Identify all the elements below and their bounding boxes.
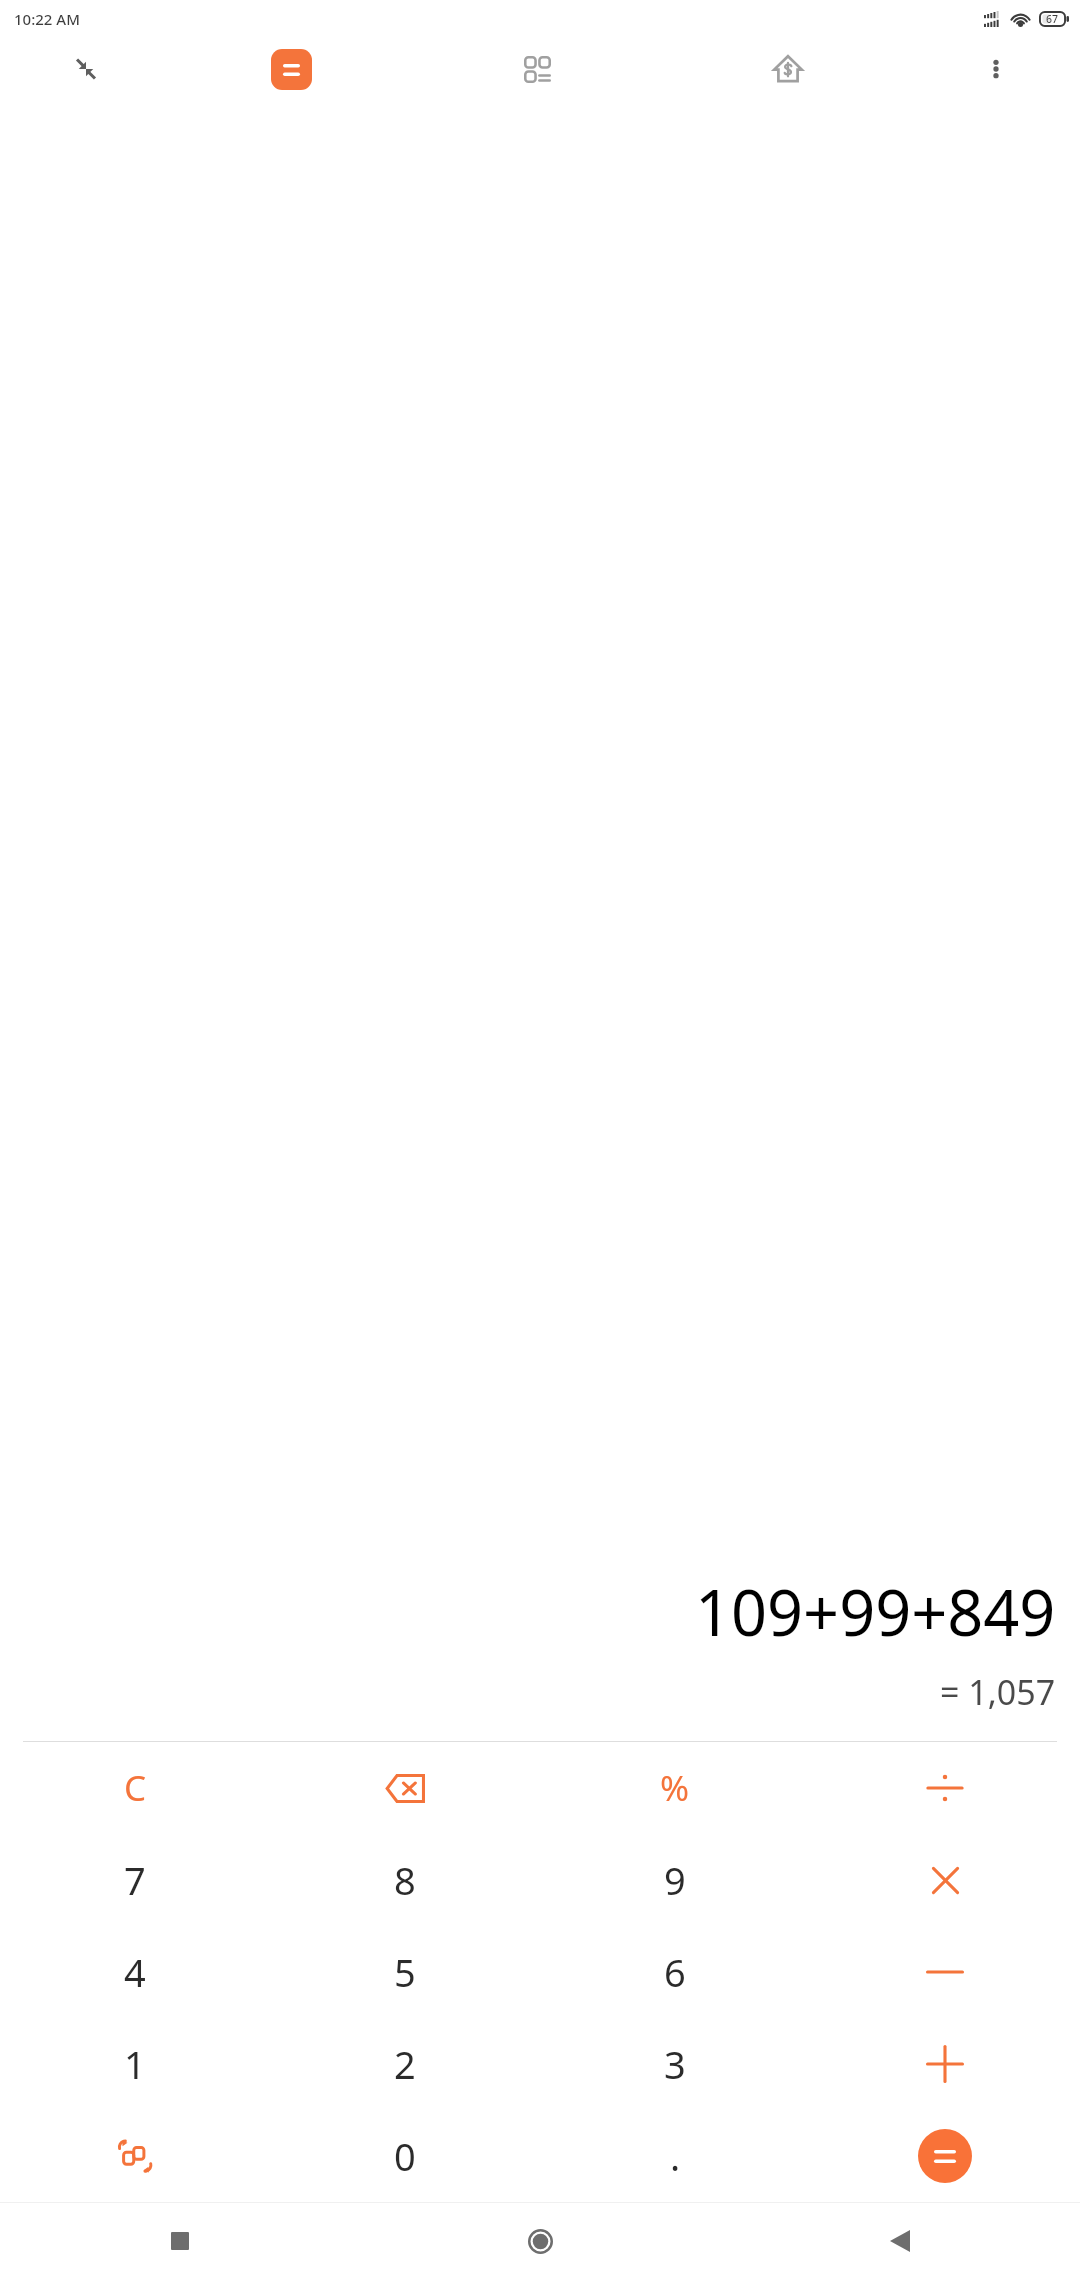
staticText: 7 bbox=[124, 1854, 146, 1906]
staticText: 4 bbox=[124, 1946, 146, 1998]
button[interactable]: 2 bbox=[270, 2018, 540, 2110]
button[interactable]: Minus bbox=[810, 1926, 1080, 2018]
staticText: 8 bbox=[394, 1854, 416, 1906]
button[interactable]: Plus bbox=[810, 2018, 1080, 2110]
button[interactable]: Decimal point bbox=[540, 2110, 810, 2202]
button[interactable]: Backspace bbox=[270, 1742, 540, 1834]
button[interactable]: 1 bbox=[0, 2018, 270, 2110]
staticText: 0 bbox=[394, 2130, 416, 2182]
staticText: 67 bbox=[1046, 12, 1059, 26]
button[interactable]: 0 bbox=[270, 2110, 540, 2202]
button[interactable]: Divide bbox=[810, 1742, 1080, 1834]
button[interactable]: Equals bbox=[810, 2110, 1080, 2202]
button[interactable]: 7 bbox=[0, 1834, 270, 1926]
button[interactable]: Home bbox=[360, 2202, 720, 2280]
button[interactable]: Clear bbox=[0, 1742, 270, 1834]
button[interactable]: More options bbox=[912, 38, 1080, 100]
button[interactable]: Mortgage bbox=[664, 38, 912, 100]
staticText: 6 bbox=[664, 1946, 686, 1998]
staticText: 9 bbox=[664, 1854, 686, 1906]
staticText: . bbox=[670, 2130, 681, 2182]
button[interactable]: Multiply bbox=[810, 1834, 1080, 1926]
button[interactable]: 8 bbox=[270, 1834, 540, 1926]
staticText: 2 bbox=[394, 2038, 416, 2090]
staticText: % bbox=[660, 1764, 690, 1812]
button[interactable]: Percent bbox=[540, 1742, 810, 1834]
staticText: 10:22 AM bbox=[14, 9, 80, 29]
button[interactable]: Back bbox=[720, 2202, 1080, 2280]
button[interactable]: 9 bbox=[540, 1834, 810, 1926]
button[interactable]: Recents bbox=[0, 2202, 360, 2280]
staticText: 5 bbox=[394, 1946, 416, 1998]
button[interactable]: Swap bbox=[0, 2110, 270, 2202]
button[interactable]: Converter bbox=[411, 38, 664, 100]
staticText: 109+99+849 bbox=[695, 1569, 1056, 1655]
button[interactable]: Collapse bbox=[0, 38, 171, 100]
staticText: 3 bbox=[664, 2038, 686, 2090]
staticText: = 1,057 bbox=[940, 1669, 1056, 1715]
button[interactable]: 4 bbox=[0, 1926, 270, 2018]
button[interactable]: 3 bbox=[540, 2018, 810, 2110]
button[interactable]: Calculator bbox=[171, 38, 411, 100]
staticText: C bbox=[124, 1764, 147, 1812]
button[interactable]: 6 bbox=[540, 1926, 810, 2018]
button[interactable]: 5 bbox=[270, 1926, 540, 2018]
staticText: 1 bbox=[124, 2038, 146, 2090]
